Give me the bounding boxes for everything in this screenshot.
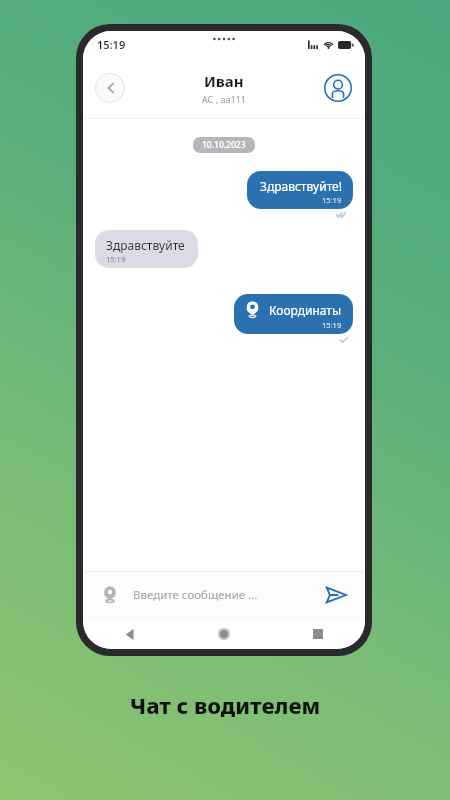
button[interactable]: Send (321, 580, 351, 610)
button[interactable]: Back (95, 73, 125, 103)
staticText: Введите сообщение ... (133, 587, 258, 603)
staticText: Чат с водителем (130, 690, 321, 720)
staticText: Здравствуйте! (260, 178, 342, 194)
staticText: 15:19 (322, 195, 342, 205)
staticText: Иван (204, 71, 244, 91)
staticText: Координаты (269, 302, 342, 318)
staticText: 15:19 (322, 320, 342, 330)
staticText: 15:19 (106, 254, 126, 264)
button[interactable]: Home (211, 621, 237, 647)
button[interactable]: Координаты (234, 294, 353, 334)
staticText: Здравствуйте (106, 237, 185, 253)
staticText: 15:19 (97, 37, 126, 52)
button[interactable]: Здравствуйте (95, 230, 198, 268)
button[interactable]: Здравствуйте! (247, 171, 353, 209)
button[interactable]: Recents (305, 621, 331, 647)
button[interactable]: Введите сообщение ... (133, 587, 313, 603)
button[interactable]: Profile (323, 73, 353, 103)
button[interactable]: Attach location (97, 582, 123, 608)
button[interactable]: Back (117, 621, 143, 647)
staticText: АС , aa111 (202, 93, 246, 105)
staticText: 10.10.2023 (202, 139, 246, 151)
